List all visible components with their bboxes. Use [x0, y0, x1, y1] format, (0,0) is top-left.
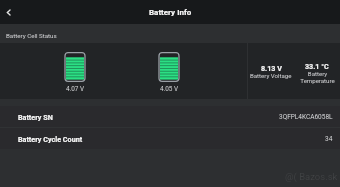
staticText: Battery Info — [149, 8, 192, 17]
staticText: 4.07 V — [66, 85, 85, 93]
button[interactable]: Battery Cycle Count — [0, 128, 340, 149]
button[interactable]: Battery SN — [0, 106, 340, 127]
staticText: Battery Cell Status — [6, 32, 57, 39]
staticText: 34 — [325, 135, 333, 143]
staticText: @( Bazos.sk — [285, 171, 338, 182]
staticText: Battery Temperature — [300, 70, 335, 84]
button[interactable]: Back — [0, 4, 17, 21]
staticText: 3QFPL4KCA6058L — [279, 113, 333, 121]
staticText: Battery Cycle Count — [18, 135, 83, 143]
staticText: Battery Voltage — [250, 72, 292, 79]
staticText: 8.13 V — [261, 64, 282, 72]
staticText: Battery SN — [18, 113, 53, 121]
staticText: 33.1 °C — [305, 62, 329, 70]
staticText: 4.05 V — [160, 85, 179, 93]
